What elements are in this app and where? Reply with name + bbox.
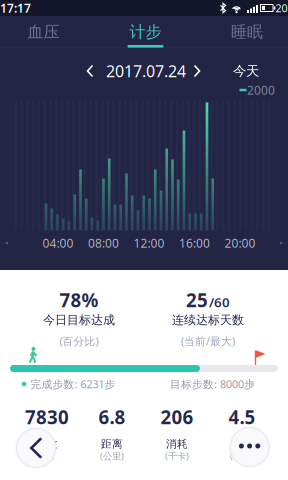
button[interactable]: Back [15,427,56,468]
staticText: (千卡) [165,450,189,462]
staticText: 20:00 [224,235,255,251]
button[interactable]: More [229,426,270,467]
button[interactable]: Next day [181,55,213,87]
staticText: 目标步数: 8000步 [170,377,255,391]
button[interactable]: Previous day [74,55,106,87]
staticText: 2017.07.24 [106,60,186,82]
staticText: 08:00 [88,235,119,251]
staticText: 今日目标达成 [43,313,115,327]
staticText: 78% [59,288,98,312]
staticText: 4.5 [228,405,255,429]
button[interactable]: 计步 [97,17,193,47]
staticText: 6.8 [98,405,125,429]
staticText: 计步 [129,22,161,42]
staticText: (步) [39,450,54,462]
staticText: 12:00 [133,235,164,251]
staticText: 2000 [247,82,275,98]
button[interactable]: 睡眠 [204,17,288,47]
staticText: 步数 [36,437,58,450]
staticText: 04:00 [42,235,73,251]
staticText: (当前/最大) [181,334,235,348]
staticText: 16:00 [179,235,210,251]
staticText: 消耗 [166,437,188,450]
button[interactable]: 血压 [0,17,86,47]
staticText: 血压 [27,22,59,42]
staticText: 今天 [233,63,259,79]
staticText: 25 [186,288,208,312]
staticText: /60 [209,293,230,311]
staticText: (公里) [100,450,124,462]
staticText: (小时) [230,450,254,462]
staticText: 睡眠 [231,437,253,450]
button[interactable]: 今天 [224,56,268,86]
staticText: 连续达标天数 [172,313,244,327]
staticText: (百分比) [59,334,98,348]
staticText: 7830 [25,405,69,429]
staticText: 17:17 [0,0,31,16]
staticText: 206 [160,405,193,429]
staticText: 睡眠 [231,22,263,42]
staticText: 20 [275,1,287,15]
staticText: 距离 [101,437,123,450]
staticText: 完成步数: 6231步 [30,377,115,391]
